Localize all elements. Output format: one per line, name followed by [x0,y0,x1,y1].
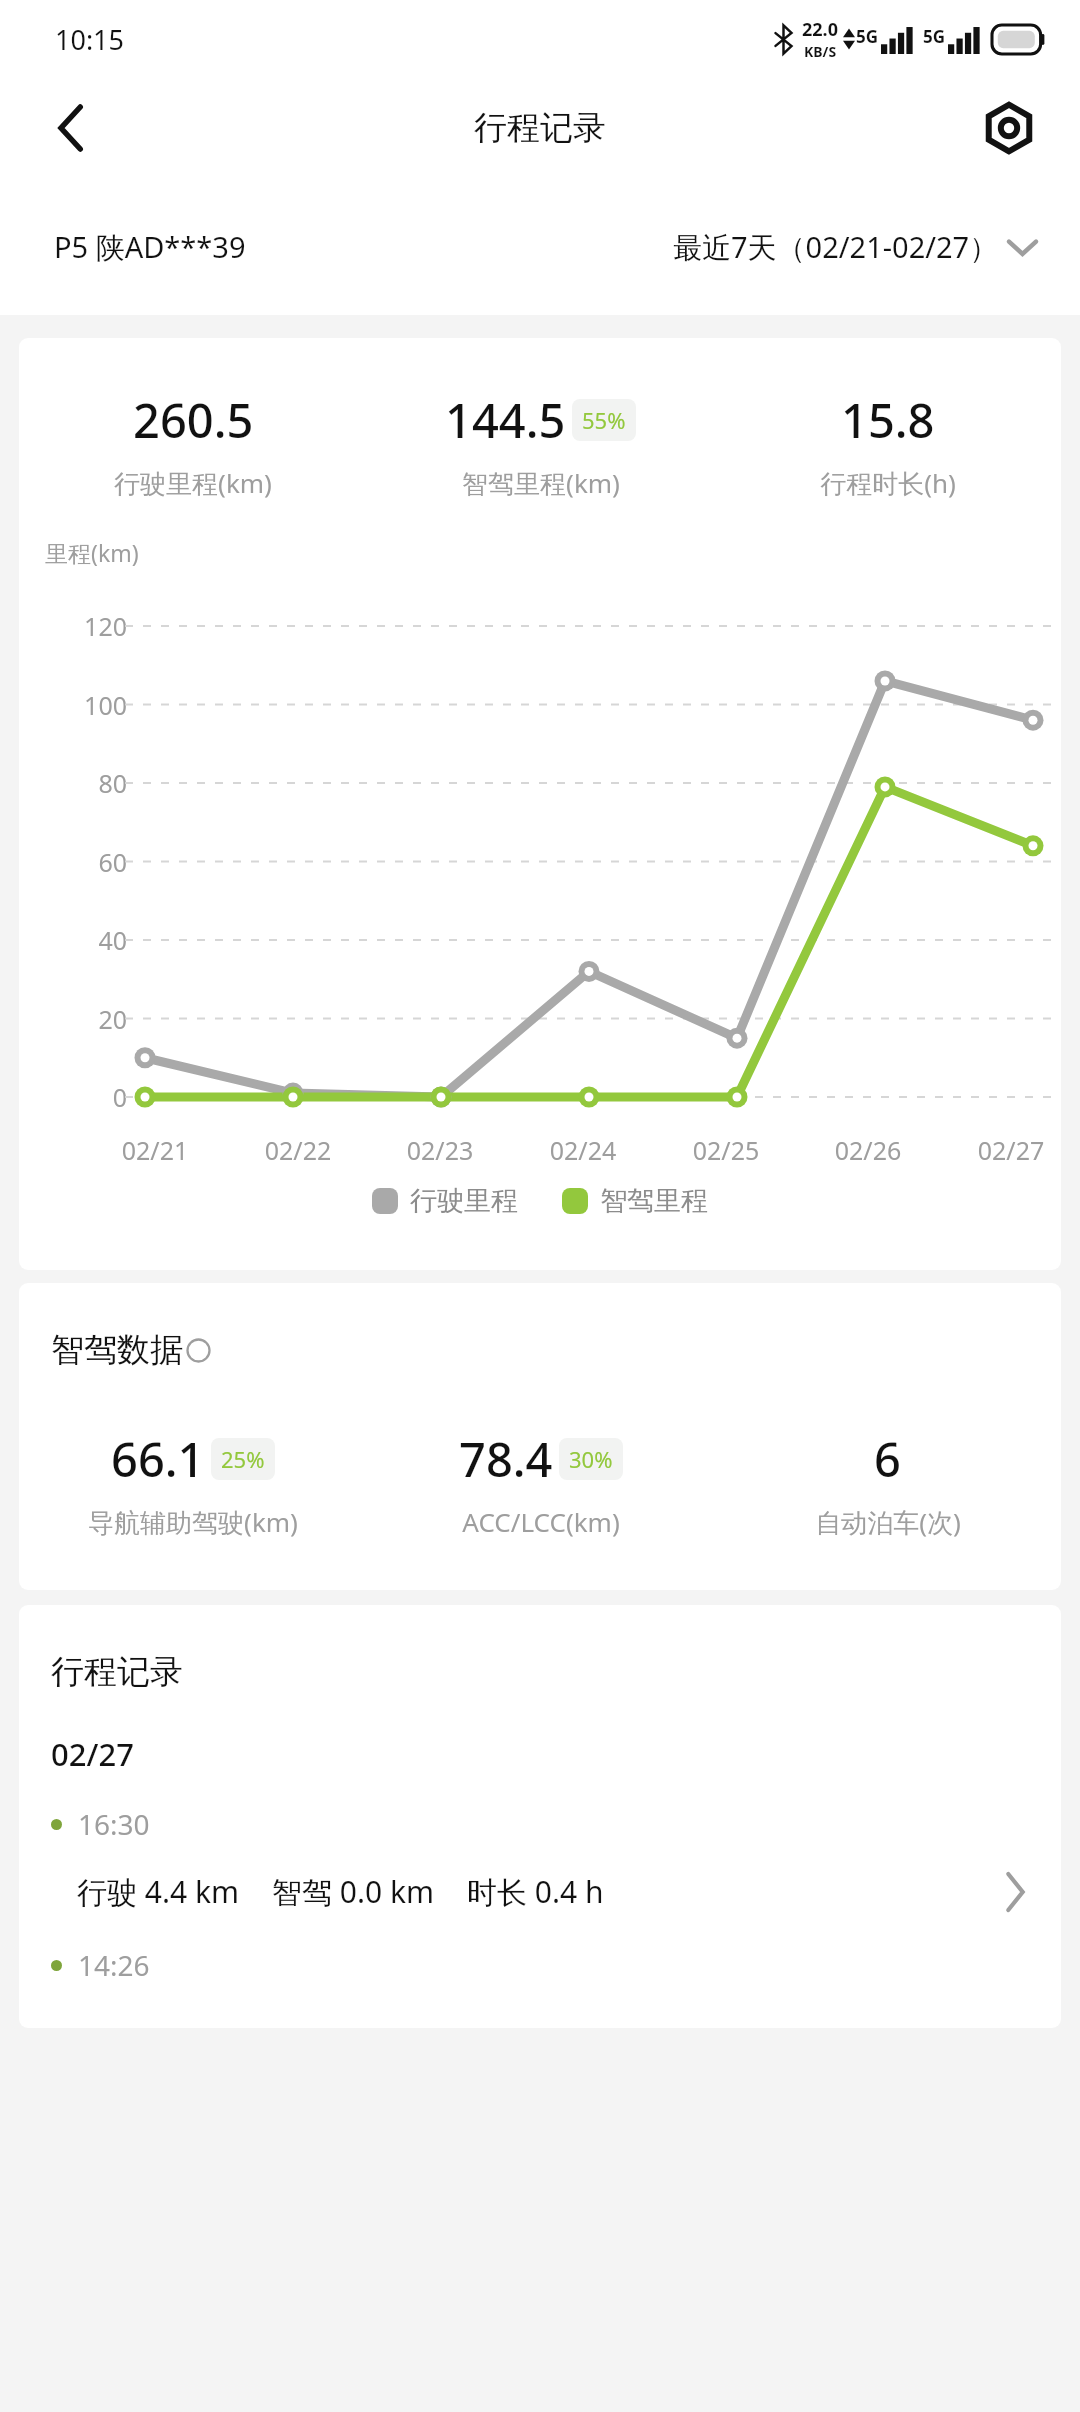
button[interactable]: 行驶里程 [372,1184,518,1218]
button[interactable]: 最近7天（02/21-02/27） [673,227,1036,267]
staticText: 02/23 [390,1133,490,1167]
staticText: 60 [43,845,127,879]
staticText: 02/26 [818,1133,918,1167]
button[interactable]: 78.4 [367,1427,714,1539]
button[interactable]: 16:30 [19,1805,1061,1912]
staticText: 100 [43,688,127,722]
staticText: 智驾 0.0 km [272,1871,435,1912]
staticText: 行驶里程 [410,1184,518,1218]
button[interactable]: Back [38,95,104,161]
button[interactable]: 智驾里程 [562,1184,708,1218]
staticText: 智驾数据 [51,1329,183,1371]
staticText: 55% [582,405,626,435]
staticText: KB/S [804,42,837,61]
staticText: 260.5 [133,388,254,452]
staticText: 行程记录 [51,1651,183,1693]
button[interactable]: 66.1 [19,1427,367,1540]
staticText: 导航辅助驾驶(km) [88,1504,298,1540]
staticText: 行驶里程(km) [114,465,272,501]
staticText: 78.4 [459,1427,553,1491]
staticText: 120 [43,609,127,643]
button[interactable]: 260.5 [19,388,367,501]
staticText: 02/22 [248,1133,348,1167]
staticText: 10:15 [55,21,125,58]
staticText: 里程(km) [45,537,139,568]
staticText: 16:30 [78,1805,150,1843]
staticText: 智驾里程(km) [462,465,620,501]
staticText: 66.1 [111,1427,205,1491]
staticText: ACC/LCC(km) [462,1504,620,1539]
staticText: 40 [43,923,127,957]
button[interactable]: 6 [714,1427,1061,1540]
staticText: 14:26 [78,1946,150,1984]
button[interactable]: 智驾数据 [51,1329,211,1371]
staticText: 最近7天（02/21-02/27） [673,227,999,267]
staticText: 02/24 [533,1133,633,1167]
staticText: 02/27 [51,1733,134,1775]
button[interactable]: 15.8 [714,388,1061,501]
staticText: 0 [43,1080,127,1114]
staticText: 6 [874,1427,901,1491]
staticText: 30% [569,1444,613,1474]
staticText: 22.0 [802,17,838,42]
staticText: 20 [43,1002,127,1036]
staticText: 02/27 [961,1133,1061,1167]
staticText: 时长 0.4 h [467,1871,604,1912]
staticText: 智驾里程 [600,1184,708,1218]
staticText: 80 [43,766,127,800]
staticText: 02/25 [676,1133,776,1167]
staticText: 25% [221,1444,265,1474]
staticText: 15.8 [841,388,935,452]
staticText: 144.5 [445,388,566,452]
staticText: 行程记录 [474,107,606,149]
staticText: 行驶 4.4 km [77,1871,240,1912]
staticText: 5G [856,25,879,48]
button[interactable]: 144.5 [367,388,714,501]
staticText: 行程时长(h) [820,465,956,501]
button[interactable]: Settings [976,95,1042,161]
button[interactable]: 14:26 [51,1946,150,1984]
staticText: 5G [923,25,946,48]
staticText: P5 陕AD***39 [54,227,246,267]
staticText: 自动泊车(次) [815,1504,961,1540]
staticText: 02/21 [105,1133,205,1167]
